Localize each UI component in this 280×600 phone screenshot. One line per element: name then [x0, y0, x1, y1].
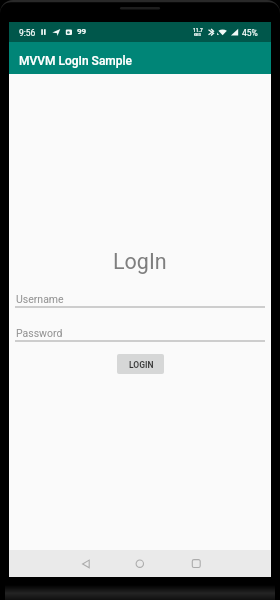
button[interactable]: LOGIN: [117, 354, 164, 374]
button[interactable]: Username: [15, 291, 265, 308]
button[interactable]: Back: [66, 550, 106, 577]
staticText: 45%: [242, 28, 258, 38]
button[interactable]: Recent apps: [176, 550, 216, 577]
button[interactable]: Home: [120, 550, 160, 577]
staticText: Password: [16, 327, 63, 339]
staticText: 99: [77, 27, 87, 36]
staticText: Username: [16, 293, 64, 305]
staticText: MVVM LogIn Sample: [19, 54, 133, 68]
staticText: LOGIN: [129, 360, 154, 370]
staticText: 9:56: [19, 28, 36, 38]
staticText: KB/S: [194, 33, 201, 37]
staticText: LogIn: [113, 249, 167, 274]
button[interactable]: Password: [15, 325, 265, 342]
staticText: 11.7: [193, 28, 203, 34]
